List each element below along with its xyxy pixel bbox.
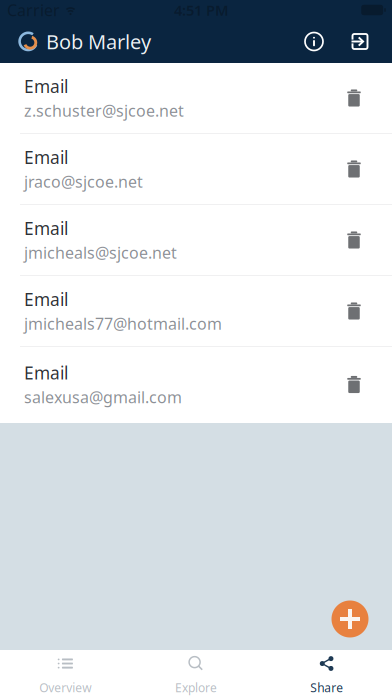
button[interactable]: Share (261, 650, 392, 696)
staticText: jmicheals77@hotmail.com (24, 313, 222, 334)
staticText: z.schuster@sjcoe.net (24, 100, 184, 121)
button[interactable]: Email (0, 347, 392, 423)
button[interactable]: Overview (0, 650, 131, 696)
button[interactable]: Email (0, 63, 392, 134)
button[interactable]: Sign out (340, 20, 380, 63)
staticText: Email (24, 146, 68, 169)
staticText: 4:51 PM (174, 0, 229, 20)
staticText: Email (24, 288, 68, 311)
staticText: Bob Marley (46, 28, 151, 55)
staticText: Explore (175, 679, 217, 695)
staticText: salexusa@gmail.com (24, 386, 182, 408)
button[interactable]: Email (0, 134, 392, 205)
staticText: jraco@sjcoe.net (24, 171, 143, 192)
staticText: Email (24, 217, 68, 240)
staticText: jmicheals@sjcoe.net (24, 242, 177, 263)
button[interactable]: Info (288, 20, 340, 63)
staticText: Share (310, 679, 343, 695)
staticText: Email (24, 75, 68, 98)
button[interactable]: Email (0, 205, 392, 276)
staticText: Carrier (7, 0, 60, 21)
button[interactable]: Email (0, 276, 392, 347)
staticText: Email (24, 361, 68, 384)
button[interactable]: Add (324, 593, 376, 645)
staticText: Overview (39, 679, 91, 695)
button[interactable]: Explore (131, 650, 261, 696)
